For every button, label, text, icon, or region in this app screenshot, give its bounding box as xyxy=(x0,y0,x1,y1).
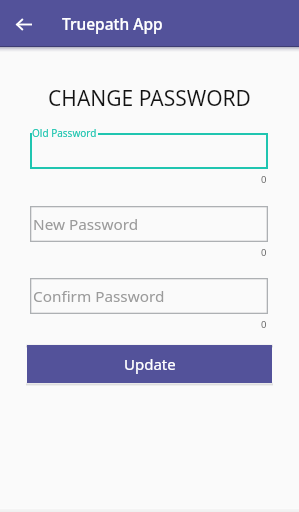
button[interactable]: New Password xyxy=(30,206,268,242)
button[interactable]: Update xyxy=(27,345,272,383)
staticText: 0 xyxy=(261,173,267,186)
staticText: CHANGE PASSWORD xyxy=(0,84,299,113)
button[interactable]: Navigate up xyxy=(9,9,39,39)
staticText: Truepath App xyxy=(62,13,163,34)
staticText: 0 xyxy=(261,246,267,259)
staticText: Old Password xyxy=(32,126,97,140)
staticText: Confirm Password xyxy=(33,286,165,307)
button[interactable] xyxy=(30,133,268,169)
staticText: Update xyxy=(124,354,176,374)
button[interactable]: Confirm Password xyxy=(30,278,268,314)
staticText: 0 xyxy=(261,318,267,331)
staticText: New Password xyxy=(33,214,139,235)
